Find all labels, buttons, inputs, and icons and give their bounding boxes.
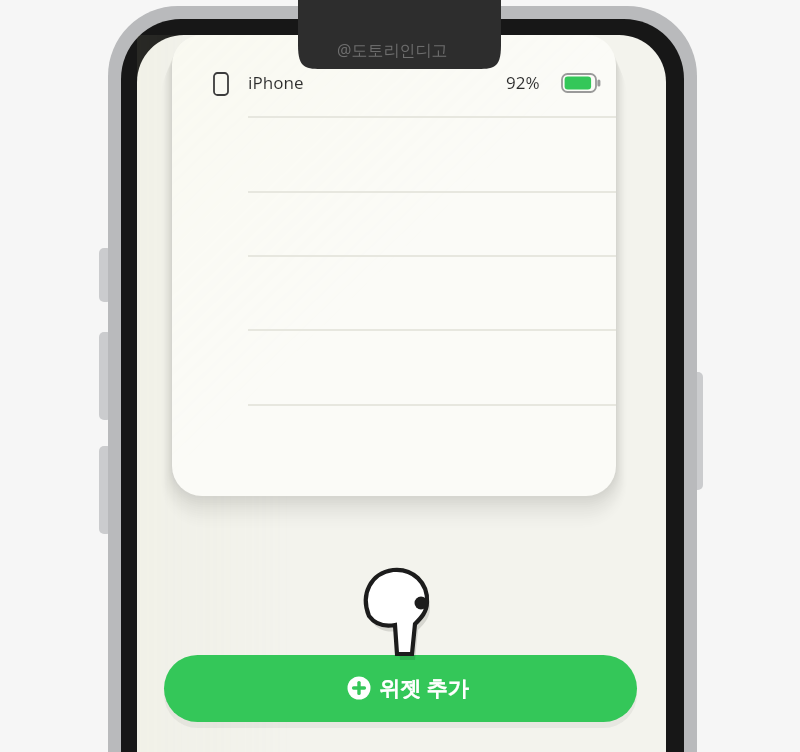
staticText: iPhone [248, 71, 304, 94]
staticText: @도토리인디고 [337, 39, 448, 61]
staticText: 위젯 추가 [379, 674, 469, 703]
staticText: 92% [506, 71, 540, 94]
button[interactable]: 위젯 추가 [164, 655, 637, 722]
